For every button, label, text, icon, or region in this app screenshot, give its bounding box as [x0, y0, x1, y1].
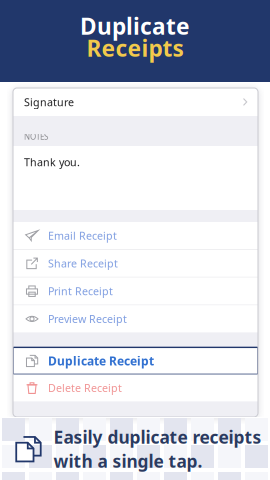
button[interactable]: Preview Receipt: [13, 305, 258, 332]
button[interactable]: Share Receipt: [13, 250, 258, 277]
staticText: Thank you.: [24, 155, 80, 169]
staticText: Signature: [24, 95, 74, 109]
staticText: Duplicate: [80, 11, 190, 41]
staticText: Receipts: [86, 33, 183, 63]
staticText: Share Receipt: [48, 256, 118, 270]
button[interactable]: Email Receipt: [13, 222, 258, 249]
button[interactable]: Delete Receipt: [13, 374, 258, 401]
staticText: Preview Receipt: [48, 312, 127, 326]
staticText: with a single tap.: [54, 449, 203, 472]
button[interactable]: Print Receipt: [13, 278, 258, 305]
staticText: Duplicate Receipt: [48, 353, 154, 369]
button[interactable]: Duplicate Receipt: [13, 347, 258, 374]
button[interactable]: Signature: [13, 88, 258, 116]
staticText: Easily duplicate receipts: [54, 425, 262, 448]
staticText: NOTES: [24, 131, 48, 142]
staticText: Email Receipt: [48, 228, 117, 243]
staticText: Print Receipt: [48, 284, 113, 298]
staticText: Delete Receipt: [48, 381, 122, 395]
